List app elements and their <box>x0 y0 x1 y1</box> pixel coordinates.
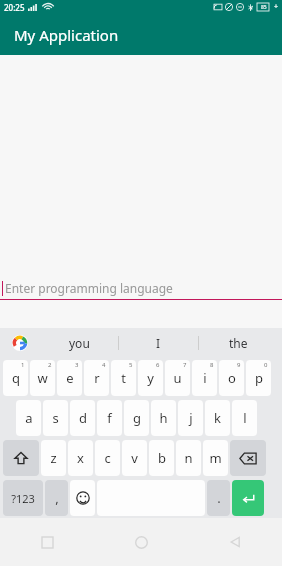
staticText: t <box>121 369 126 387</box>
button[interactable]: k <box>205 400 230 436</box>
button[interactable]: t <box>111 360 136 396</box>
button[interactable]: u <box>165 360 190 396</box>
button[interactable]: h <box>151 400 176 436</box>
staticText: Enter programming language <box>5 280 173 296</box>
button[interactable]: v <box>122 440 147 476</box>
button[interactable]: the <box>199 328 278 358</box>
staticText: 0 <box>264 361 268 369</box>
button[interactable]: d <box>70 400 95 436</box>
staticText: 20:25 <box>4 2 25 13</box>
staticText: ?123 <box>11 491 35 506</box>
staticText: q <box>12 369 20 387</box>
button[interactable]: you <box>40 328 118 358</box>
button[interactable]: x <box>68 440 93 476</box>
staticText: n <box>184 449 193 467</box>
staticText: 4 <box>102 361 106 369</box>
staticText: v <box>131 449 138 467</box>
button[interactable]: o <box>219 360 244 396</box>
button[interactable]: e <box>57 360 82 396</box>
staticText: p <box>255 369 263 387</box>
staticText: a <box>25 409 33 427</box>
staticText: c <box>104 449 111 467</box>
staticText: 8 <box>210 361 214 369</box>
button[interactable]: , <box>45 480 68 516</box>
staticText: 3 <box>75 361 79 369</box>
staticText: y <box>147 369 154 387</box>
button[interactable]: a <box>16 400 41 436</box>
staticText: b <box>158 449 166 467</box>
staticText: , <box>55 489 59 507</box>
button[interactable]: w <box>30 360 55 396</box>
staticText: o <box>228 369 236 387</box>
button[interactable]: My Application <box>0 14 282 55</box>
button[interactable]: ?123 <box>3 480 43 516</box>
staticText: w <box>37 369 48 387</box>
staticText: h <box>159 409 168 427</box>
staticText: i <box>203 369 207 387</box>
staticText: z <box>50 449 57 467</box>
button[interactable]: z <box>41 440 66 476</box>
staticText: the <box>229 335 248 351</box>
button[interactable]: f <box>97 400 122 436</box>
button[interactable]: m <box>203 440 228 476</box>
staticText: My Application <box>14 25 119 45</box>
staticText: e <box>66 369 74 387</box>
button[interactable]: Backspace <box>230 440 266 476</box>
button[interactable]: . <box>207 480 230 516</box>
button[interactable]: Enter programming language <box>0 277 282 299</box>
button[interactable]: Shift <box>3 440 39 476</box>
staticText: you <box>69 335 90 351</box>
button[interactable]: I <box>119 328 198 358</box>
staticText: 6 <box>156 361 160 369</box>
button[interactable]: p <box>246 360 271 396</box>
staticText: 7 <box>183 361 187 369</box>
staticText: l <box>243 409 247 427</box>
staticText: d <box>79 409 87 427</box>
staticText: + <box>274 2 279 12</box>
staticText: f <box>107 409 112 427</box>
staticText: j <box>189 409 193 427</box>
staticText: m <box>209 449 222 467</box>
staticText: 5 <box>129 361 133 369</box>
staticText: g <box>133 409 141 427</box>
button[interactable]: i <box>192 360 217 396</box>
staticText: I <box>156 335 161 351</box>
staticText: 1 <box>21 361 25 369</box>
button[interactable]: g <box>124 400 149 436</box>
staticText: x <box>77 449 84 467</box>
button[interactable]: r <box>84 360 109 396</box>
staticText: . <box>217 489 221 507</box>
staticText: 2 <box>48 361 52 369</box>
button[interactable]: Emoji <box>70 480 95 516</box>
staticText: s <box>52 409 59 427</box>
staticText: u <box>173 369 182 387</box>
button[interactable]: n <box>176 440 201 476</box>
button[interactable]: y <box>138 360 163 396</box>
button[interactable]: j <box>178 400 203 436</box>
staticText: r <box>94 369 100 387</box>
button[interactable]: l <box>232 400 257 436</box>
button[interactable]: Enter <box>232 480 264 516</box>
staticText: 85 <box>261 4 267 11</box>
button[interactable]: Google search <box>0 328 40 358</box>
button[interactable]: c <box>95 440 120 476</box>
button[interactable]: q <box>3 360 28 396</box>
button[interactable]: b <box>149 440 174 476</box>
staticText: 9 <box>237 361 241 369</box>
staticText: k <box>214 409 221 427</box>
button[interactable]: s <box>43 400 68 436</box>
